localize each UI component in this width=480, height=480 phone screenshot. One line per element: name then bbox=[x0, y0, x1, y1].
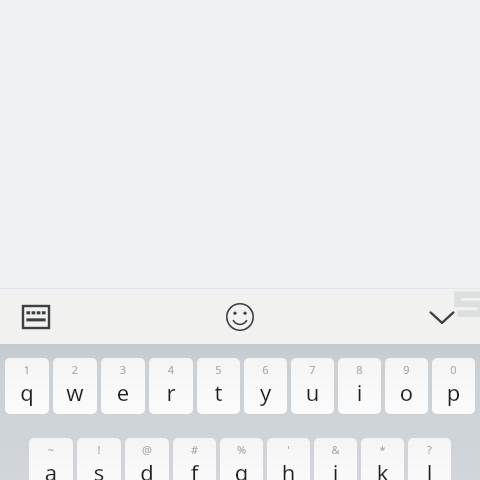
staticText: 7 bbox=[291, 362, 334, 377]
button[interactable]: @ bbox=[125, 438, 169, 480]
button[interactable]: ? bbox=[408, 438, 451, 480]
staticText: f bbox=[173, 457, 216, 480]
staticText: s bbox=[77, 457, 121, 480]
staticText: 0 bbox=[432, 362, 475, 377]
staticText: ? bbox=[408, 442, 451, 457]
button[interactable]: 4 bbox=[149, 358, 193, 414]
staticText: w bbox=[53, 377, 97, 407]
button[interactable]: * bbox=[361, 438, 404, 480]
button[interactable]: ' bbox=[267, 438, 310, 480]
staticText: 9 bbox=[385, 362, 428, 377]
staticText: h bbox=[267, 457, 310, 480]
button[interactable]: & bbox=[314, 438, 357, 480]
button[interactable]: 6 bbox=[244, 358, 287, 414]
staticText: 5 bbox=[197, 362, 240, 377]
staticText: ! bbox=[77, 442, 121, 457]
staticText: o bbox=[385, 377, 428, 407]
staticText: @ bbox=[125, 442, 169, 457]
button[interactable]: 5 bbox=[197, 358, 240, 414]
staticText: 6 bbox=[244, 362, 287, 377]
button[interactable]: 3 bbox=[101, 358, 145, 414]
button[interactable]: ! bbox=[77, 438, 121, 480]
button[interactable]: 1 bbox=[5, 358, 49, 414]
staticText: a bbox=[29, 457, 73, 480]
button[interactable]: Emoji bbox=[214, 291, 266, 343]
staticText: j bbox=[314, 457, 357, 480]
staticText: 4 bbox=[149, 362, 193, 377]
staticText: 2 bbox=[53, 362, 97, 377]
staticText: e bbox=[101, 377, 145, 407]
staticText: t bbox=[197, 377, 240, 407]
button[interactable]: 8 bbox=[338, 358, 381, 414]
staticText: i bbox=[338, 377, 381, 407]
staticText: & bbox=[314, 442, 357, 457]
button[interactable]: Switch keyboard bbox=[12, 293, 60, 341]
staticText: 3 bbox=[101, 362, 145, 377]
staticText: r bbox=[149, 377, 193, 407]
button[interactable]: 0 bbox=[432, 358, 475, 414]
button[interactable]: Hide keyboard bbox=[418, 293, 466, 341]
staticText: 1 bbox=[5, 362, 49, 377]
staticText: ~ bbox=[29, 442, 73, 457]
button[interactable]: 7 bbox=[291, 358, 334, 414]
staticText: % bbox=[220, 442, 263, 457]
staticText: # bbox=[173, 442, 216, 457]
staticText: d bbox=[125, 457, 169, 480]
staticText: l bbox=[408, 457, 451, 480]
button[interactable]: # bbox=[173, 438, 216, 480]
button[interactable]: % bbox=[220, 438, 263, 480]
staticText: g bbox=[220, 457, 263, 480]
staticText: p bbox=[432, 377, 475, 407]
button[interactable]: ~ bbox=[29, 438, 73, 480]
staticText: k bbox=[361, 457, 404, 480]
staticText: * bbox=[361, 442, 404, 457]
button[interactable]: 2 bbox=[53, 358, 97, 414]
staticText: q bbox=[5, 377, 49, 407]
button[interactable]: 9 bbox=[385, 358, 428, 414]
staticText: u bbox=[291, 377, 334, 407]
staticText: 8 bbox=[338, 362, 381, 377]
staticText: ' bbox=[267, 442, 310, 457]
staticText: y bbox=[244, 377, 287, 407]
